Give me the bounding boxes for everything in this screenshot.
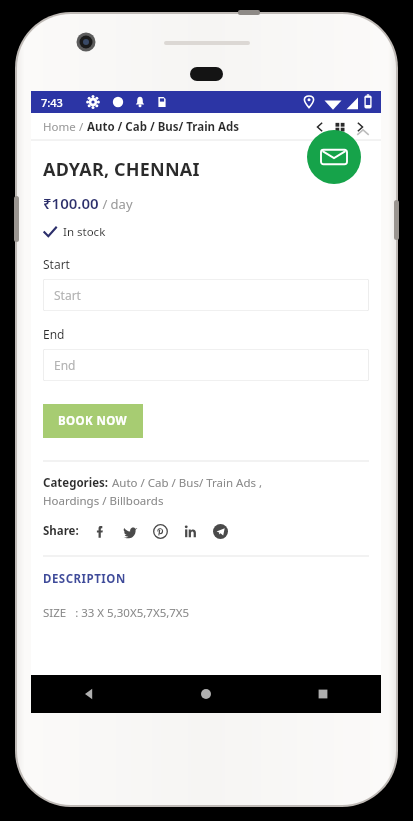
staticText: ADYAR, CHENNAI bbox=[43, 157, 200, 182]
button[interactable]: Share on Twitter bbox=[123, 524, 138, 539]
button[interactable]: Share on Pinterest bbox=[153, 524, 168, 539]
staticText: Auto / Cab / Bus/ Train Ads , bbox=[112, 475, 263, 491]
button[interactable]: Previous product bbox=[311, 118, 329, 136]
staticText: Home bbox=[43, 119, 76, 135]
staticText: Start bbox=[43, 256, 70, 272]
staticText: Start bbox=[54, 287, 81, 303]
button[interactable]: Scroll to top bbox=[355, 125, 371, 141]
staticText: 7:43 bbox=[41, 95, 63, 110]
button[interactable]: Share on Telegram bbox=[213, 524, 228, 539]
button[interactable]: Back bbox=[31, 675, 147, 713]
staticText: BOOK NOW bbox=[58, 413, 128, 429]
staticText: End bbox=[54, 357, 76, 373]
staticText: In stock bbox=[63, 224, 106, 240]
staticText: / bbox=[76, 119, 87, 135]
button[interactable]: Contact us by email bbox=[307, 130, 361, 184]
button[interactable]: Home bbox=[147, 675, 264, 713]
staticText: / day bbox=[99, 195, 133, 213]
button[interactable]: Share on Facebook bbox=[93, 524, 108, 539]
staticText: Hoardings / Billboards bbox=[43, 493, 164, 509]
button[interactable]: BOOK NOW bbox=[43, 404, 143, 438]
button[interactable]: Auto / Cab / Bus/ Train Ads , bbox=[112, 475, 263, 491]
button[interactable]: Home bbox=[43, 119, 76, 135]
staticText: Share: bbox=[43, 523, 79, 539]
staticText: Categories: bbox=[43, 475, 112, 491]
button[interactable]: Share on LinkedIn bbox=[183, 524, 198, 539]
staticText: Auto / Cab / Bus/ Train Ads bbox=[87, 119, 240, 135]
button[interactable]: Recent apps bbox=[264, 675, 381, 713]
staticText: DESCRIPTION bbox=[43, 571, 126, 587]
staticText: SIZE : 33 X 5,30X5,7X5,7X5 bbox=[43, 605, 190, 621]
staticText: ₹100.00 bbox=[43, 193, 99, 213]
button[interactable]: Next product bbox=[351, 118, 369, 136]
staticText: End bbox=[43, 326, 65, 342]
button[interactable]: Hoardings / Billboards bbox=[43, 493, 164, 509]
button[interactable]: All products bbox=[331, 118, 349, 136]
button[interactable]: End bbox=[43, 349, 369, 381]
button[interactable]: Start bbox=[43, 279, 369, 311]
